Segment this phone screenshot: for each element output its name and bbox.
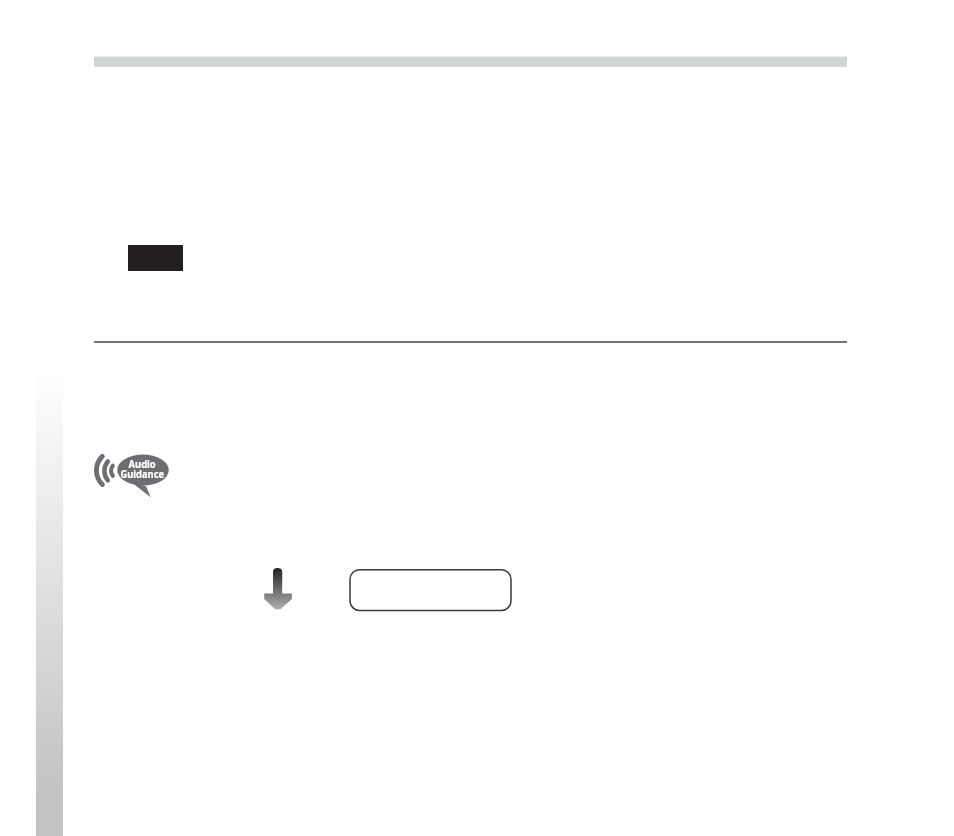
button[interactable]: Setting field <box>350 569 512 611</box>
button[interactable]: Scroll down <box>263 566 293 610</box>
button[interactable]: Audio Guidance <box>92 450 172 500</box>
